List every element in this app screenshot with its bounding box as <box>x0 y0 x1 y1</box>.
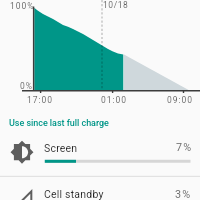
staticText: 10/18 <box>103 0 129 10</box>
staticText: Use since last full charge <box>9 118 109 129</box>
staticText: Cell standby <box>44 188 104 200</box>
staticText: 01:00 <box>101 95 127 105</box>
staticText: 7% <box>176 141 193 154</box>
staticText: 0% <box>20 81 33 91</box>
staticText: 100% <box>10 1 35 11</box>
button[interactable]: Cell standby battery usage, 3 percent <box>0 177 200 200</box>
staticText: 17:00 <box>27 95 53 105</box>
staticText: Screen <box>44 142 78 154</box>
staticText: 3% <box>175 188 192 200</box>
button[interactable]: Screen battery usage, 7 percent <box>0 131 200 177</box>
staticText: 09:00 <box>167 95 193 105</box>
